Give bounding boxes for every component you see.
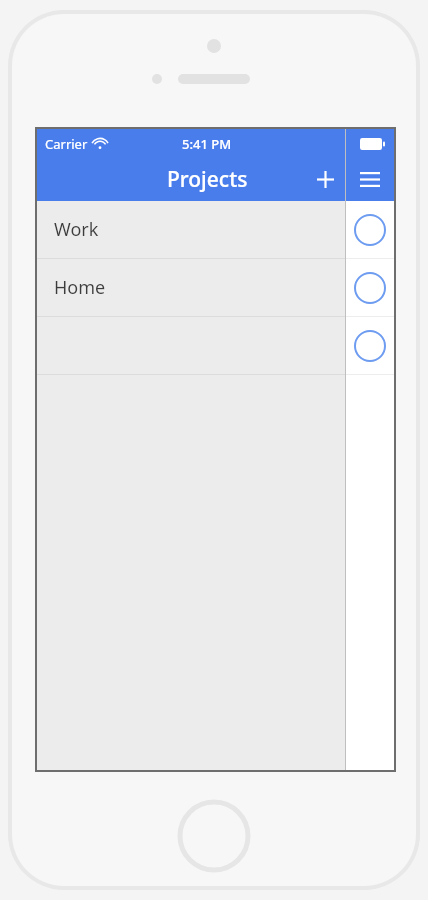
button[interactable]: Select: [346, 259, 394, 317]
button[interactable]: Menu: [348, 158, 392, 201]
button[interactable]: Select: [346, 317, 394, 375]
button[interactable]: Add project: [305, 158, 345, 201]
button[interactable]: Home: [37, 259, 345, 317]
staticText: 5:41 PM: [182, 135, 232, 153]
button[interactable]: Work: [37, 201, 345, 259]
button[interactable]: Select: [346, 201, 394, 259]
staticText: Home: [54, 275, 106, 300]
staticText: Carrier: [45, 135, 88, 153]
staticText: Work: [54, 217, 99, 242]
staticText: Projects: [167, 165, 248, 194]
